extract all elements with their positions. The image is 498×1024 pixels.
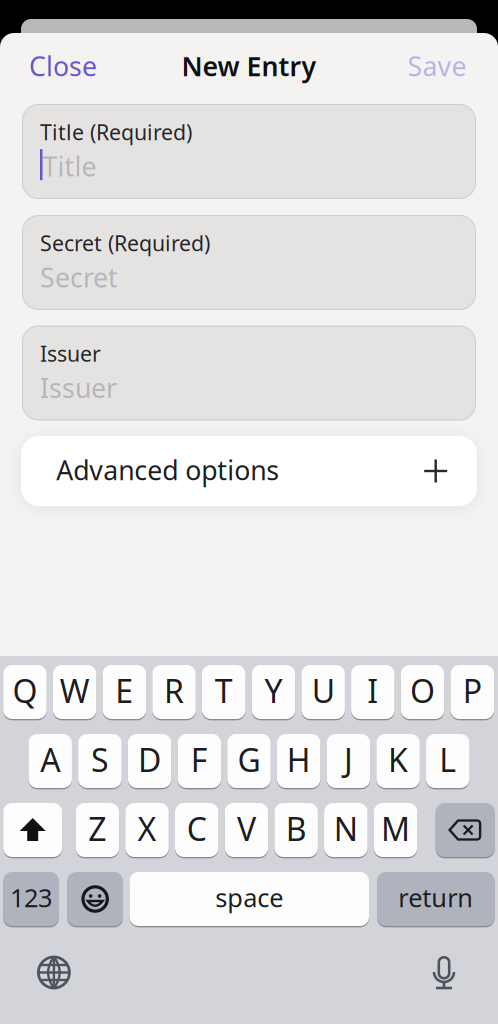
staticText: W bbox=[60, 669, 90, 712]
button[interactable]: V bbox=[225, 802, 268, 858]
button[interactable]: H bbox=[277, 733, 320, 789]
staticText: P bbox=[463, 669, 482, 712]
staticText: Y bbox=[264, 669, 282, 712]
button[interactable]: C bbox=[175, 802, 218, 858]
staticText: Z bbox=[88, 807, 106, 850]
button[interactable]: S bbox=[78, 733, 122, 789]
button[interactable]: Issuer bbox=[22, 325, 476, 420]
staticText: R bbox=[164, 669, 184, 712]
button[interactable]: Next keyboard bbox=[27, 945, 81, 999]
button[interactable]: return bbox=[377, 871, 495, 927]
button[interactable]: K bbox=[376, 733, 420, 789]
button[interactable]: O bbox=[401, 664, 444, 720]
staticText: X bbox=[138, 807, 157, 850]
button[interactable]: N bbox=[324, 802, 368, 858]
staticText: H bbox=[287, 738, 311, 781]
staticText: Advanced options bbox=[56, 452, 279, 488]
staticText: T bbox=[215, 669, 233, 712]
staticText: D bbox=[138, 738, 161, 781]
staticText: G bbox=[237, 738, 260, 781]
staticText: B bbox=[286, 807, 307, 850]
staticText: F bbox=[191, 738, 208, 781]
staticText: Issuer bbox=[40, 370, 117, 405]
staticText: Save bbox=[407, 48, 466, 84]
button[interactable]: Q bbox=[3, 664, 47, 720]
staticText: A bbox=[40, 738, 60, 781]
staticText: I bbox=[367, 669, 378, 712]
button[interactable]: Close bbox=[21, 40, 105, 92]
button[interactable]: Save bbox=[399, 40, 474, 92]
staticText: New Entry bbox=[181, 48, 316, 84]
staticText: S bbox=[91, 738, 109, 781]
button[interactable]: R bbox=[152, 664, 196, 720]
staticText: Secret (Required) bbox=[40, 229, 210, 257]
button[interactable]: Shift bbox=[3, 802, 62, 858]
staticText: return bbox=[398, 881, 473, 914]
staticText: Title (Required) bbox=[40, 118, 192, 146]
staticText: C bbox=[187, 807, 207, 850]
staticText: Q bbox=[12, 669, 37, 712]
button[interactable]: Secret (Required) bbox=[22, 215, 476, 310]
button[interactable]: P bbox=[450, 664, 494, 720]
staticText: N bbox=[334, 807, 358, 850]
button[interactable]: Dictate bbox=[424, 946, 464, 1000]
button[interactable]: M bbox=[374, 802, 417, 858]
staticText: V bbox=[237, 807, 256, 850]
button[interactable]: G bbox=[227, 733, 271, 789]
staticText: Secret bbox=[40, 259, 118, 295]
staticText: Title bbox=[42, 148, 96, 184]
staticText: J bbox=[344, 738, 353, 781]
button[interactable]: E bbox=[103, 664, 146, 720]
button[interactable]: I bbox=[351, 664, 395, 720]
button[interactable]: 123 bbox=[3, 871, 59, 927]
button[interactable]: A bbox=[28, 733, 72, 789]
staticText: K bbox=[388, 738, 408, 781]
button[interactable]: B bbox=[274, 802, 318, 858]
button[interactable]: Emoji bbox=[67, 871, 123, 927]
button[interactable]: X bbox=[125, 802, 169, 858]
button[interactable]: Y bbox=[252, 664, 295, 720]
staticText: L bbox=[439, 738, 456, 781]
staticText: Close bbox=[29, 48, 97, 84]
button[interactable]: F bbox=[178, 733, 221, 789]
button[interactable]: L bbox=[426, 733, 470, 789]
button[interactable]: W bbox=[53, 664, 96, 720]
staticText: Issuer bbox=[40, 339, 101, 368]
staticText: 123 bbox=[10, 881, 52, 914]
button[interactable]: J bbox=[327, 733, 370, 789]
button[interactable]: Advanced options bbox=[21, 436, 477, 506]
button[interactable]: D bbox=[128, 733, 171, 789]
button[interactable]: space bbox=[129, 871, 369, 927]
button[interactable]: Z bbox=[76, 802, 119, 858]
button[interactable]: U bbox=[301, 664, 345, 720]
button[interactable]: Delete bbox=[436, 802, 495, 858]
staticText: M bbox=[381, 807, 410, 850]
staticText: space bbox=[215, 881, 283, 914]
button[interactable]: Title (Required) bbox=[22, 104, 476, 199]
staticText: E bbox=[115, 669, 133, 712]
staticText: O bbox=[410, 669, 435, 712]
staticText: U bbox=[312, 669, 335, 712]
button[interactable]: T bbox=[202, 664, 245, 720]
